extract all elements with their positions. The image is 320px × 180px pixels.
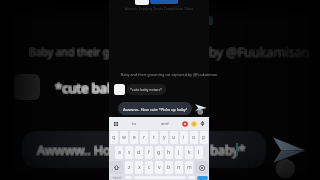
staticText: Baby and their grooming cat captured by … [121,72,218,77]
staticText: by @Fuukamisan [210,44,311,61]
button[interactable]: f [145,146,153,159]
button[interactable]: v [155,161,163,174]
staticText: g [157,149,161,156]
staticText: Baby and their grooming [29,46,152,60]
staticText: j [178,149,180,156]
button[interactable]: l [195,146,203,159]
staticText: Awwww.. How cute *Picks up baby* [38,143,247,160]
staticText: c [148,164,151,171]
staticText: by @Fuukamisan [209,45,310,62]
staticText: *cute baby noises* [55,79,172,97]
staticText: Baby and their grooming [28,46,151,60]
staticText: r [143,134,146,141]
staticText: Baby and their grooming [30,46,153,60]
button[interactable]: r [140,131,148,144]
button[interactable]: i [180,131,188,144]
button[interactable]: j [175,146,183,159]
staticText: Baby and their grooming [28,44,151,58]
button[interactable]: g [155,146,163,159]
staticText: s [128,149,131,156]
button[interactable]: GIF search [180,119,189,128]
staticText: Awwww.. How cute *Picks up baby* [37,141,246,158]
button[interactable]: . [188,176,195,179]
button[interactable]: ?123 [110,176,123,179]
button[interactable]: Enter [197,176,208,180]
staticText: m [187,164,192,171]
staticText: e [133,134,136,141]
button[interactable]: n [175,161,183,174]
staticText: Awwww.. How cute *Picks up baby* [123,107,187,112]
staticText: *cute baby noises* [54,80,171,98]
staticText: *cute baby noises* [54,79,171,97]
button[interactable]: , [125,176,132,179]
button[interactable] [135,0,149,5]
button[interactable]: Stickers [189,119,198,128]
button[interactable]: w [120,131,128,144]
staticText: o [192,134,196,141]
staticText: ?123 [113,176,121,179]
button[interactable] [150,0,178,4]
button[interactable]: q [110,131,118,144]
staticText: by @Fuukamisan [209,44,310,61]
staticText: z [128,164,131,171]
staticText: d [137,149,141,156]
staticText: Awwww.. How cute *Picks up baby* [37,143,246,160]
staticText: Baby and their grooming [28,45,151,59]
staticText: *cute baby noises* [56,79,173,97]
staticText: by @Fuukamisan [209,43,310,60]
button[interactable]: u [170,131,178,144]
staticText: by @Fuukamisan [208,44,309,61]
staticText: Awwww.. How cute *Picks up baby* [37,142,246,159]
button[interactable]: Shift [110,161,123,174]
button[interactable]: Backspace [195,161,208,174]
button[interactable]: Apps [112,120,119,127]
staticText: by @Fuukamisan [208,45,309,62]
button[interactable]: Awwww.. How cute *Picks up baby* [118,102,192,115]
staticText: p [202,134,206,141]
button[interactable]: p [200,131,208,144]
staticText: Awwww.. How cute *Picks up baby* [38,142,247,159]
staticText: *cute baby noises* [56,80,173,98]
staticText: h [167,149,171,156]
staticText: by @Fuukamisan [208,43,309,60]
staticText: Animals Enjoying Treats Compilation Vide… [109,6,209,11]
staticText: Baby and their grooming [29,44,152,58]
staticText: Baby and their grooming [29,45,152,59]
staticText: l [198,149,200,156]
button[interactable]: t [150,131,158,144]
button[interactable]: d [135,146,143,159]
button[interactable]: a [115,146,123,159]
button[interactable]: Send [194,102,208,115]
button[interactable]: s [125,146,133,159]
button[interactable]: e [130,131,138,144]
staticText: Baby and their grooming [30,45,153,59]
button[interactable]: x [135,161,143,174]
button[interactable]: m [185,161,193,174]
staticText: Awwww.. How cute *Picks up baby* [36,143,245,160]
staticText: n [177,164,181,171]
staticText: t [153,134,155,141]
staticText: u [172,134,176,141]
staticText: v [158,164,161,171]
button[interactable]: c [145,161,153,174]
button[interactable]: y [160,131,168,144]
staticText: i [183,134,185,141]
button[interactable]: z [125,161,133,174]
staticText: w [122,134,126,141]
button[interactable]: b [165,161,173,174]
button[interactable]: k [185,146,193,159]
staticText: *cute baby noises* [54,78,171,96]
staticText: *cute baby noises* [56,78,173,96]
button[interactable]: h [165,146,173,159]
staticText: by @Fuukamisan [210,45,311,62]
staticText: a [118,149,121,156]
staticText: Awwww.. How cute *Picks up baby* [36,141,245,158]
staticText: y [163,134,166,141]
staticText: by @Fuukamisan [210,43,311,60]
button[interactable]: *cute baby noises* [127,84,166,95]
staticText: b [167,164,171,171]
button[interactable]: Settings [198,119,207,128]
staticText: Baby and their grooming [30,44,153,58]
button[interactable]: o [190,131,198,144]
